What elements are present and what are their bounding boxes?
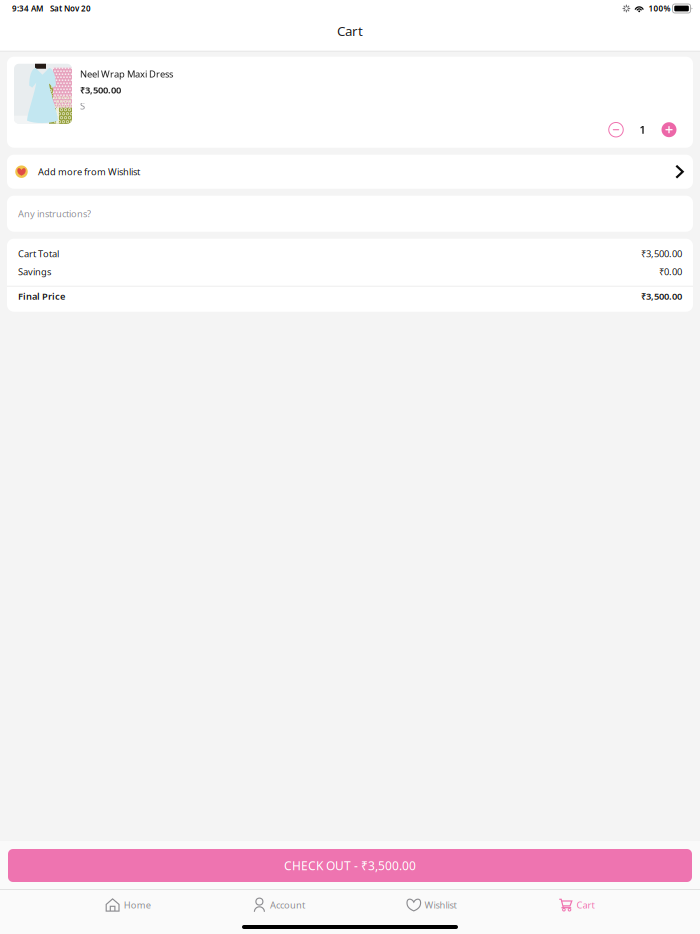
staticText: Account	[270, 899, 305, 911]
staticText: CHECK OUT - ₹3,500.00	[284, 857, 416, 873]
button[interactable]: Cart	[555, 891, 599, 919]
staticText: Cart	[577, 899, 595, 911]
staticText: Cart Total	[18, 247, 59, 260]
staticText: Savings	[18, 265, 51, 278]
button[interactable]: Add more from Wishlist	[7, 155, 693, 189]
staticText: Any instructions?	[18, 207, 91, 220]
staticText: Add more from Wishlist	[38, 165, 140, 178]
staticText: Sat Nov 20	[50, 3, 91, 14]
staticText: Home	[124, 899, 151, 911]
button[interactable]: Increase quantity	[658, 119, 680, 141]
button[interactable]: Wishlist	[403, 891, 461, 919]
button[interactable]: CHECK OUT - ₹3,500.00	[0, 849, 700, 882]
staticText: Neel Wrap Maxi Dress	[80, 68, 173, 80]
button[interactable]: Account	[249, 891, 309, 919]
staticText: 1	[639, 123, 645, 137]
button[interactable]: Home	[101, 891, 155, 919]
button[interactable]: Decrease quantity	[605, 119, 627, 141]
staticText: ₹3,500.00	[641, 247, 682, 260]
staticText: ₹3,500.00	[641, 290, 682, 302]
staticText: Final Price	[18, 290, 65, 302]
staticText: Cart	[337, 22, 363, 40]
staticText: ₹0.00	[659, 265, 682, 278]
staticText: ₹3,500.00	[80, 84, 121, 96]
staticText: Wishlist	[425, 899, 457, 911]
staticText: 9:34 AM	[12, 3, 43, 14]
staticText: 100%	[648, 3, 670, 14]
staticText: S	[80, 100, 85, 112]
